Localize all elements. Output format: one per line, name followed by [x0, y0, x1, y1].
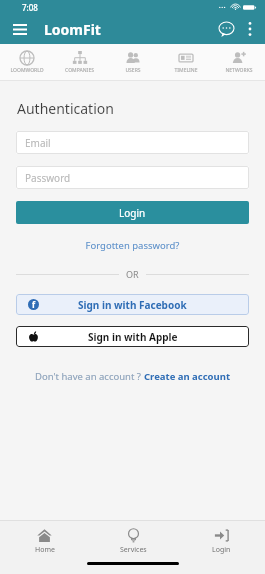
staticText: Home [35, 545, 55, 555]
button[interactable]: Password [16, 166, 249, 189]
button[interactable]: USERS [106, 44, 159, 80]
staticText: Create an account [144, 370, 231, 383]
staticText: Sign in with Apple [88, 330, 178, 344]
staticText: Authentication [17, 99, 114, 118]
button[interactable]: Login [177, 521, 265, 561]
staticText: 7:08 [22, 2, 38, 13]
button[interactable]: Services [89, 521, 177, 561]
staticText: Sign in with Facebook [78, 298, 187, 312]
button[interactable]: Sign in with Apple [16, 326, 249, 347]
staticText: COMPANIES [65, 67, 94, 74]
button[interactable]: Forgotten password? [0, 237, 265, 254]
button[interactable]: Messages [213, 16, 239, 42]
staticText: OR [126, 268, 139, 280]
staticText: Login [212, 545, 231, 555]
button[interactable]: Home [0, 521, 89, 561]
staticText: TIMELINE [174, 67, 198, 74]
button[interactable]: LOOMWORLD [0, 44, 53, 80]
button[interactable]: Don't have an account ? [0, 370, 265, 383]
button[interactable]: COMPANIES [53, 44, 106, 80]
staticText: LOOMWORLD [10, 67, 44, 74]
staticText: Email [25, 136, 51, 150]
button[interactable]: f [16, 294, 249, 315]
staticText: Password [25, 171, 71, 185]
staticText: LoomFit [44, 20, 101, 39]
staticText: Services [120, 545, 147, 555]
button[interactable]: Login [16, 201, 249, 224]
staticText: NETWORKS [225, 67, 253, 74]
staticText: f [32, 299, 36, 310]
button[interactable]: Email [16, 131, 249, 154]
button[interactable]: Open navigation menu [8, 17, 32, 41]
button[interactable]: More options [239, 18, 261, 40]
staticText: USERS [125, 67, 141, 74]
staticText: Don't have an account ? [35, 370, 144, 383]
staticText: Login [119, 206, 146, 220]
button[interactable]: NETWORKS [212, 44, 265, 80]
button[interactable]: TIMELINE [159, 44, 212, 80]
